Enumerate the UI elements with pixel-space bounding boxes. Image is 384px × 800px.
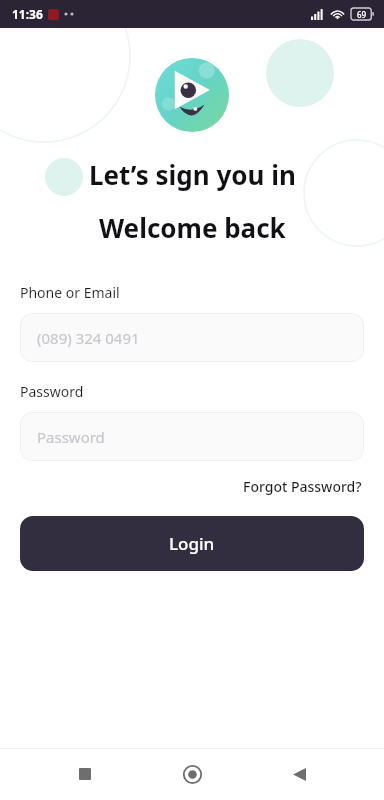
staticText: 11:36 — [12, 6, 43, 22]
button[interactable]: Back — [277, 752, 321, 796]
button[interactable]: Forgot Password? — [241, 475, 364, 498]
button[interactable]: Password — [20, 412, 364, 461]
staticText: (089) 324 0491 — [37, 328, 140, 348]
staticText: Password — [37, 427, 105, 447]
button[interactable]: (089) 324 0491 — [20, 313, 364, 362]
button[interactable]: Recent apps — [63, 752, 107, 796]
staticText: Phone or Email — [20, 283, 120, 302]
staticText: 69 — [357, 9, 367, 20]
staticText: Welcome back — [99, 210, 286, 245]
button[interactable]: Home — [170, 752, 214, 796]
staticText: Login — [169, 532, 215, 555]
staticText: Password — [20, 382, 84, 401]
staticText: Let’s sign you in — [89, 157, 296, 192]
staticText: Forgot Password? — [243, 477, 362, 496]
button[interactable]: Login — [20, 516, 364, 571]
